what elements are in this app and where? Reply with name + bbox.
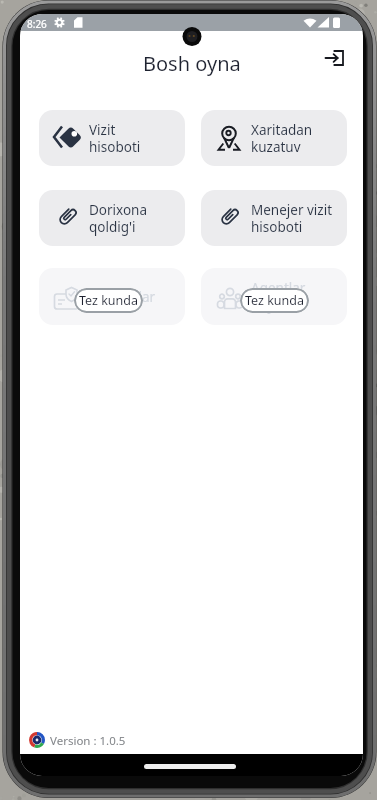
button[interactable] bbox=[316, 42, 352, 74]
button[interactable]: Agentlar ro'yxati bbox=[201, 268, 347, 325]
staticText: Bosh oyna bbox=[143, 50, 241, 77]
staticText: Tez kunda bbox=[245, 292, 304, 309]
button[interactable]: Dorixona qoldig'i bbox=[39, 190, 185, 246]
button[interactable]: Menejer vizit hisoboti bbox=[201, 190, 347, 246]
button[interactable]: Vizit hisoboti bbox=[39, 110, 185, 166]
staticText: 8:26 bbox=[27, 17, 47, 31]
button[interactable]: Xaritadan kuzatuv bbox=[201, 110, 347, 166]
staticText: Version : 1.0.5 bbox=[50, 733, 126, 749]
staticText: Hisobotlar bbox=[89, 288, 156, 306]
staticText: Menejer vizit hisoboti bbox=[251, 201, 333, 236]
staticText: Vizit hisoboti bbox=[89, 121, 141, 156]
staticText: Dorixona qoldig'i bbox=[89, 201, 148, 236]
staticText: Xaritadan kuzatuv bbox=[251, 121, 313, 156]
button[interactable]: Hisobotlar bbox=[39, 268, 185, 325]
staticText: Agentlar ro'yxati bbox=[251, 279, 306, 314]
staticText: Tez kunda bbox=[79, 292, 138, 309]
